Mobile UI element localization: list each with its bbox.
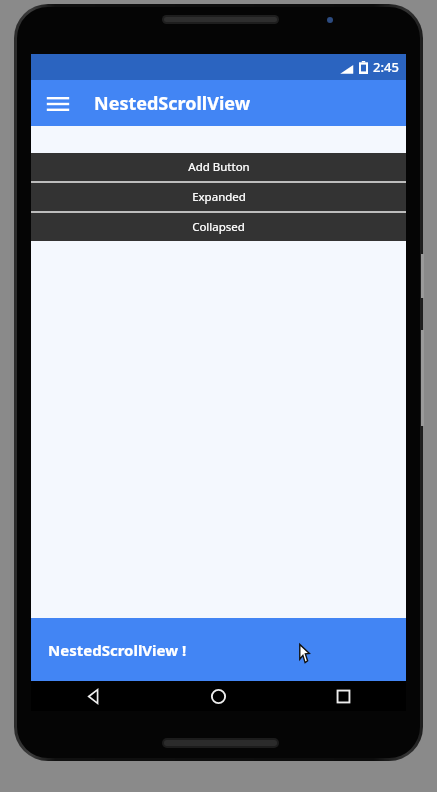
staticText: Collapsed — [192, 219, 245, 235]
staticText: Expanded — [192, 189, 246, 205]
button[interactable]: Expanded — [31, 183, 406, 211]
button[interactable]: Collapsed — [31, 213, 406, 241]
staticText: 2:45 — [373, 58, 399, 76]
staticText: Add Button — [188, 159, 250, 175]
staticText: NestedScrollView — [94, 91, 251, 116]
button[interactable]: Add Button — [31, 153, 406, 181]
button[interactable]: NestedScrollView ! — [31, 618, 406, 681]
staticText: NestedScrollView ! — [48, 640, 187, 660]
button[interactable]: Recent apps — [281, 681, 406, 711]
button[interactable]: Home — [156, 681, 281, 711]
button[interactable]: Back — [31, 681, 156, 711]
button[interactable]: Open navigation drawer — [42, 88, 73, 119]
